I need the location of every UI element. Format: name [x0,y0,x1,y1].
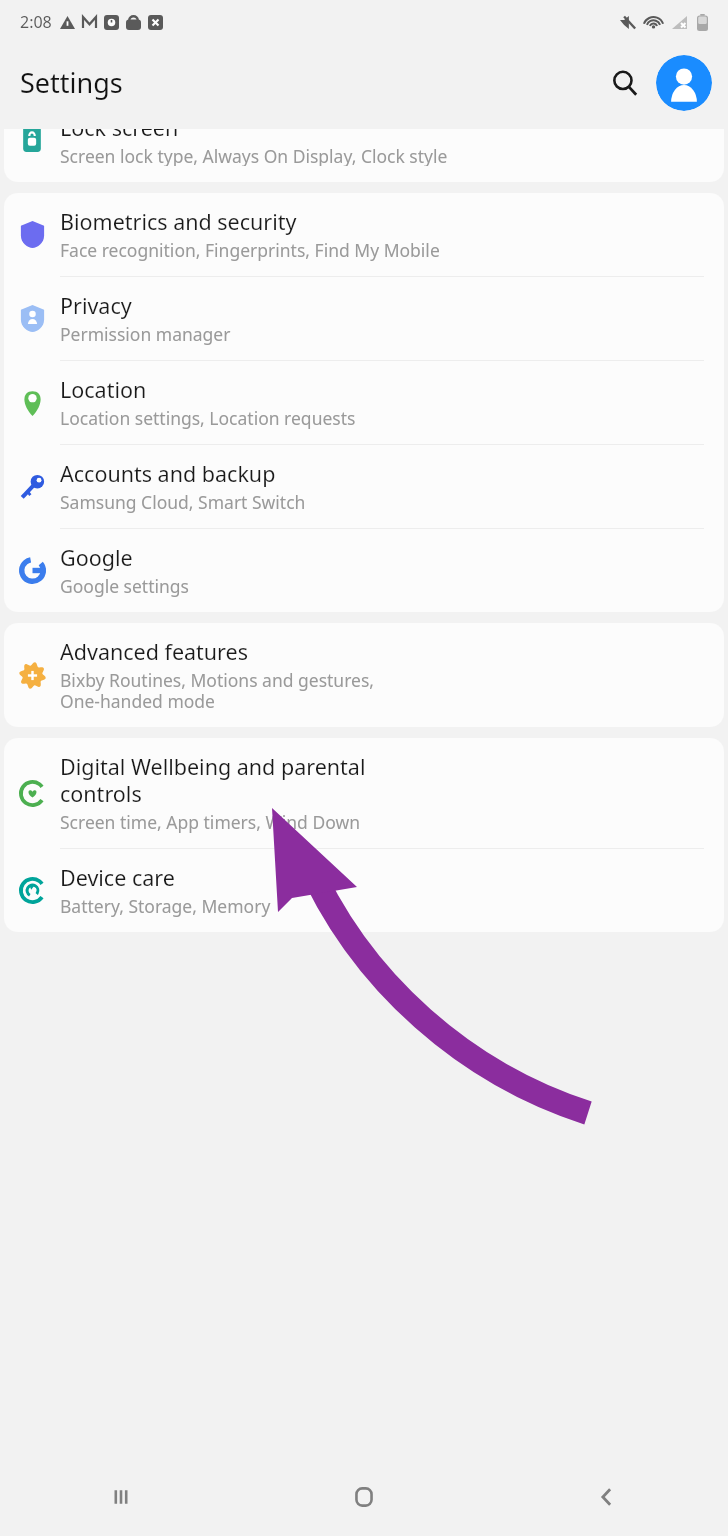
staticText: Screen time, App timers, Wind Down [60,810,360,834]
button[interactable]: Digital Wellbeing and parental controls [4,738,724,848]
button[interactable]: Location [4,361,724,444]
staticText: Privacy [60,291,132,320]
button[interactable]: Privacy [4,277,724,360]
staticText: Settings [20,64,123,101]
staticText: Biometrics and security [60,207,297,236]
staticText: 2:08 [20,11,52,33]
button[interactable]: Recents [0,1458,242,1536]
staticText: Location settings, Location requests [60,406,356,430]
staticText: Device care [60,863,175,892]
button[interactable]: Search [602,60,648,106]
staticText: Google settings [60,574,189,598]
button[interactable]: Back [485,1458,728,1536]
button[interactable]: Home [242,1458,485,1536]
staticText: Permission manager [60,322,231,346]
staticText: Google [60,543,133,572]
staticText: Lock screen [60,129,179,142]
button[interactable]: Biometrics and security [4,193,724,276]
staticText: Accounts and backup [60,459,276,488]
button[interactable]: Lock screen [4,129,724,182]
button[interactable]: Advanced features [4,623,724,727]
button[interactable]: Google [4,529,724,612]
staticText: Location [60,375,147,404]
staticText: Samsung Cloud, Smart Switch [60,490,306,514]
button[interactable]: Accounts and backup [4,445,724,528]
staticText: Bixby Routines, Motions and gestures, On… [60,668,375,713]
staticText: Digital Wellbeing and parental controls [60,752,366,808]
staticText: Advanced features [60,637,248,666]
button[interactable]: Device care [4,849,724,932]
button[interactable]: Account [656,55,712,111]
staticText: Screen lock type, Always On Display, Clo… [60,144,448,166]
staticText: Face recognition, Fingerprints, Find My … [60,238,440,262]
staticText: Battery, Storage, Memory [60,894,271,918]
